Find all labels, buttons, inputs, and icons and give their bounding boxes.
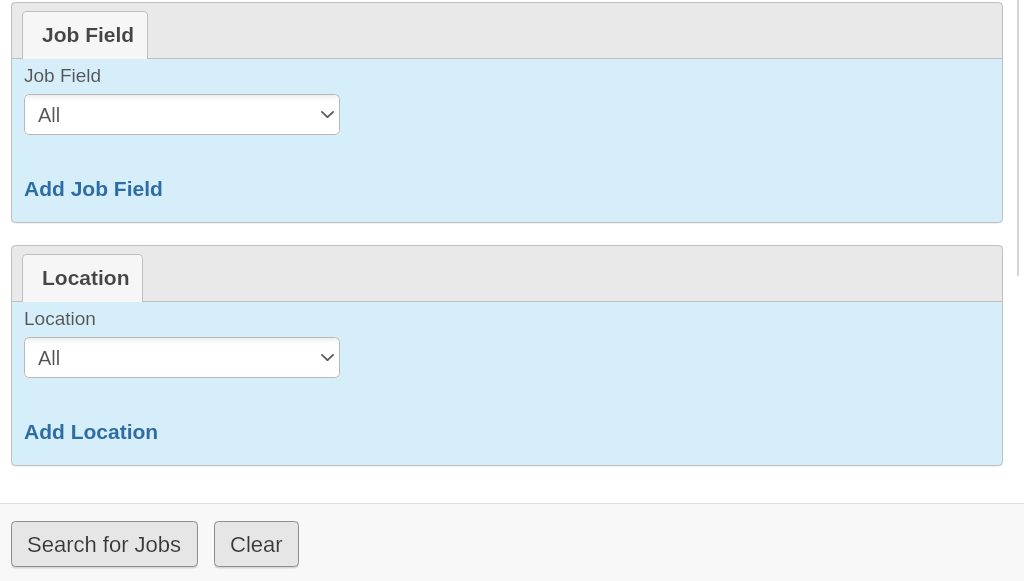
staticText: All [38,104,61,126]
staticText: Add Job Field [24,177,163,200]
button[interactable]: Add Location [24,420,159,443]
button[interactable]: Clear [214,521,299,568]
other: Open dropdown [321,111,334,118]
staticText: Add Location [24,420,159,443]
staticText: Search for Jobs [27,532,182,557]
button[interactable]: Search for Jobs [11,521,198,568]
staticText: Clear [230,532,283,557]
button[interactable]: All [24,94,340,135]
staticText: Job Field [42,23,135,46]
staticText: Location [24,308,96,329]
other: Open dropdown [321,354,334,361]
button[interactable]: Job Field [22,11,148,59]
button[interactable]: Location [22,254,143,302]
button[interactable]: Add Job Field [24,177,163,200]
staticText: All [38,347,61,369]
staticText: Job Field [24,65,102,86]
button[interactable]: All [24,337,340,378]
staticText: Location [42,266,130,289]
